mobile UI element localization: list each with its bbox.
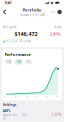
button[interactable]: Back	[2, 8, 7, 15]
button[interactable]: More options	[50, 9, 56, 15]
staticText: Today	[54, 25, 61, 29]
staticText: $3,204.18 today	[6, 39, 30, 43]
button[interactable]: AAPL	[3, 109, 61, 120]
staticText: AAPL	[3, 109, 10, 113]
staticText: 9:41	[4, 0, 11, 5]
staticText: Jan	[5, 96, 7, 98]
staticText: May	[25, 96, 28, 98]
staticText: Jul	[36, 96, 37, 98]
staticText: $146,472	[14, 30, 37, 37]
staticText: -2.41%	[49, 31, 61, 37]
staticText: Holdings	[3, 103, 16, 107]
button[interactable]: 1Y	[25, 59, 32, 65]
staticText: 1W	[6, 60, 10, 64]
staticText: 1Y	[26, 60, 30, 64]
staticText: Apple Inc. · 120 sh	[3, 113, 27, 120]
staticText: Mar	[15, 96, 18, 98]
button[interactable]: Profile	[56, 10, 62, 14]
staticText: 1M	[16, 60, 20, 64]
staticText: Portfolio	[22, 7, 41, 13]
button[interactable]: 1M	[15, 59, 22, 65]
staticText: Updated 9:41 AM	[19, 13, 44, 17]
button[interactable]: 1W	[5, 59, 12, 65]
staticText: Net worth	[3, 25, 17, 29]
staticText: -1.37%	[51, 113, 61, 116]
staticText: Performance	[5, 52, 31, 57]
staticText: Sep	[45, 96, 48, 98]
staticText: Nov	[56, 96, 59, 98]
